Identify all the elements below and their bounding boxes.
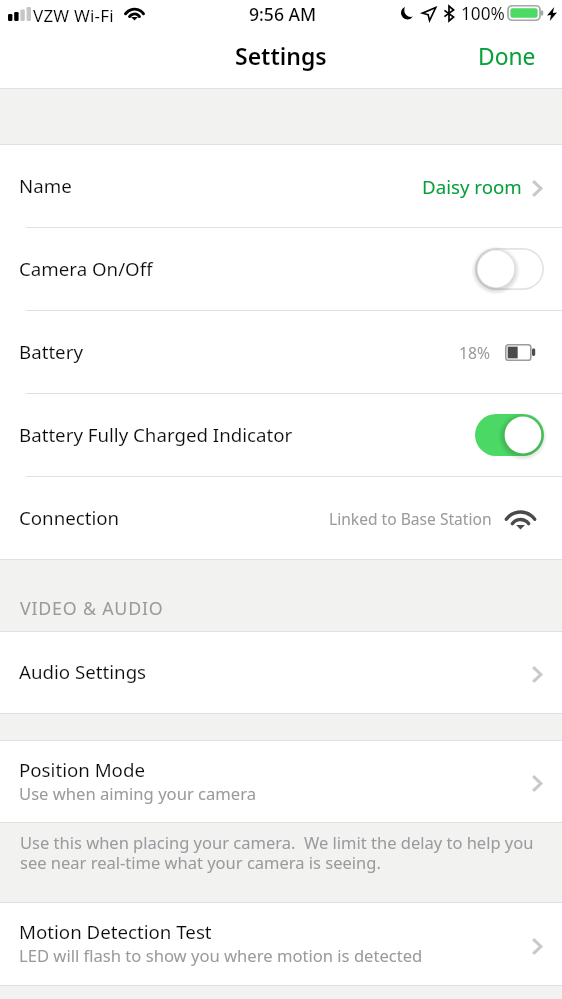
staticText: Motion Detection Test	[19, 919, 212, 944]
button[interactable]: Motion Detection Test	[0, 903, 562, 985]
staticText: Camera On/Off	[19, 256, 153, 281]
staticText: 100%	[461, 2, 505, 25]
staticText: Done	[478, 41, 536, 72]
staticText: Battery Fully Charged Indicator	[19, 422, 293, 447]
staticText: Audio Settings	[19, 659, 147, 684]
button[interactable]: Camera On/Off	[0, 228, 562, 310]
button[interactable]: Name	[0, 145, 562, 227]
staticText: Use this when placing your camera. We li…	[20, 831, 534, 874]
button[interactable]: Camera On/Off	[475, 248, 544, 290]
staticText: Battery	[19, 339, 83, 364]
button[interactable]: Connection	[0, 477, 562, 559]
other: Battery level	[505, 344, 535, 361]
staticText: Linked to Base Station	[329, 508, 492, 529]
staticText: 9:56 AM	[249, 2, 317, 26]
staticText: Name	[19, 173, 72, 198]
staticText: Settings	[235, 40, 327, 71]
button[interactable]: Done	[456, 31, 562, 88]
other: Wi-Fi connected	[505, 507, 536, 529]
staticText: Position Mode	[19, 757, 145, 782]
button[interactable]: Battery	[0, 311, 562, 393]
staticText: VIDEO & AUDIO	[20, 596, 164, 620]
staticText: LED will flash to show you where motion …	[19, 944, 423, 967]
staticText: 18%	[459, 342, 490, 363]
staticText: VZW Wi-Fi	[33, 4, 114, 27]
button[interactable]: Audio Settings	[0, 632, 562, 713]
staticText: Use when aiming your camera	[19, 782, 257, 805]
staticText: Daisy room	[422, 174, 522, 199]
button[interactable]: Position Mode	[0, 741, 562, 822]
staticText: Connection	[19, 505, 120, 530]
button[interactable]: Battery Fully Charged Indicator	[475, 414, 544, 456]
button[interactable]: Battery Fully Charged Indicator	[0, 394, 562, 476]
